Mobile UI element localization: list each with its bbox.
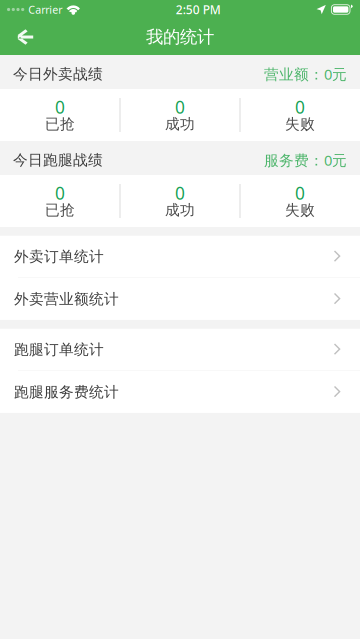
staticText: 我的统计: [146, 26, 214, 48]
staticText: 0: [175, 181, 185, 204]
staticText: 外卖营业额统计: [14, 290, 119, 308]
staticText: 今日外卖战绩: [13, 65, 103, 83]
staticText: Carrier: [28, 2, 62, 17]
staticText: 成功: [165, 201, 195, 219]
button[interactable]: 外卖订单统计: [0, 236, 360, 277]
staticText: 失败: [285, 115, 315, 133]
staticText: 成功: [165, 115, 195, 133]
staticText: 已抢: [45, 201, 75, 219]
staticText: 0: [175, 95, 185, 118]
staticText: 营业额：0元: [264, 64, 347, 84]
button[interactable]: 外卖营业额统计: [0, 278, 360, 320]
staticText: 失败: [285, 201, 315, 219]
staticText: 跑腿服务费统计: [14, 383, 119, 401]
staticText: 0: [55, 95, 65, 118]
button[interactable]: Back: [3, 15, 47, 59]
staticText: 0: [55, 181, 65, 204]
staticText: 外卖订单统计: [14, 247, 104, 265]
staticText: 0: [295, 95, 305, 118]
staticText: 已抢: [45, 115, 75, 133]
staticText: 2:50 PM: [176, 1, 221, 17]
staticText: 服务费：0元: [264, 150, 347, 170]
staticText: 跑腿订单统计: [14, 340, 104, 358]
button[interactable]: 跑腿订单统计: [0, 329, 360, 370]
staticText: 0: [295, 181, 305, 204]
button[interactable]: 跑腿服务费统计: [0, 371, 360, 413]
staticText: 今日跑腿战绩: [13, 151, 103, 169]
